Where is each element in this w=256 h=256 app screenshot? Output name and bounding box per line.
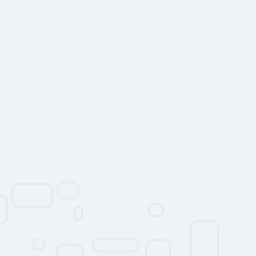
button[interactable]: Toggle xyxy=(75,207,82,220)
button[interactable]: Search field xyxy=(92,239,138,252)
button[interactable]: Tab xyxy=(146,240,170,256)
button[interactable]: Card xyxy=(0,196,7,224)
button[interactable]: Badge xyxy=(33,239,44,249)
button[interactable]: Tile xyxy=(57,182,78,198)
button[interactable]: Chip xyxy=(149,204,163,216)
